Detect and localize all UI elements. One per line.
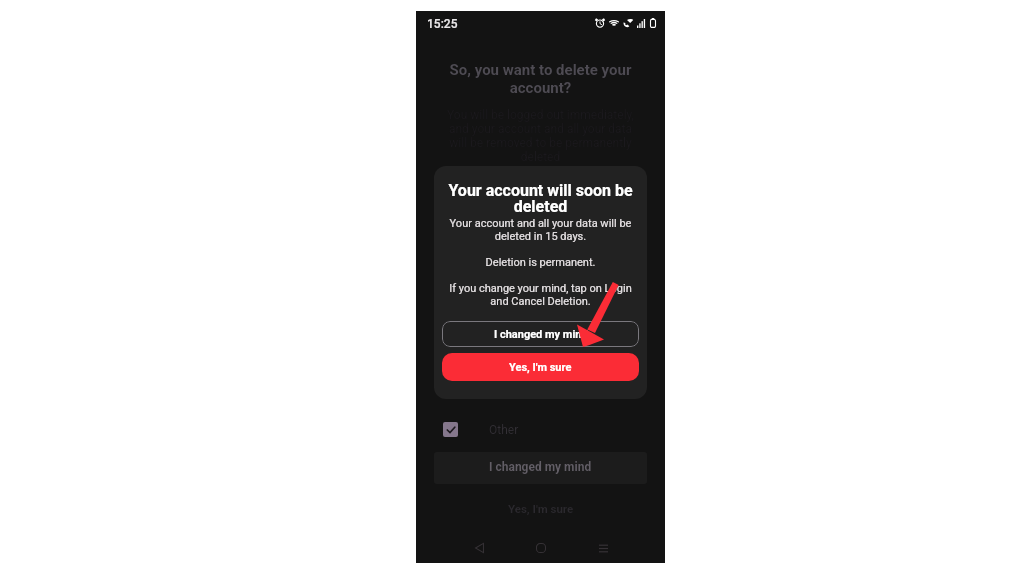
staticText: Yes, I'm sure <box>508 502 574 515</box>
staticText: Yes, I'm sure <box>509 361 572 374</box>
button[interactable]: I changed my mind <box>434 452 647 484</box>
staticText: So, you want to delete your account? <box>442 61 639 97</box>
staticText: Your account and all your data will be d… <box>442 217 639 308</box>
staticText: I changed my mind <box>494 328 588 341</box>
button[interactable]: Yes, I'm sure <box>442 353 639 381</box>
staticText: 15:25 <box>427 17 458 31</box>
button[interactable]: Yes, I'm sure <box>416 497 665 519</box>
button[interactable]: Other <box>443 422 647 437</box>
button[interactable]: Back <box>465 534 493 562</box>
button[interactable]: Recent apps <box>589 534 617 562</box>
staticText: Your account will soon be deleted <box>442 181 639 216</box>
button[interactable]: I changed my mind <box>442 321 639 347</box>
button[interactable]: Home <box>527 534 555 562</box>
staticText: Other <box>489 423 519 437</box>
staticText: I changed my mind <box>489 460 592 474</box>
